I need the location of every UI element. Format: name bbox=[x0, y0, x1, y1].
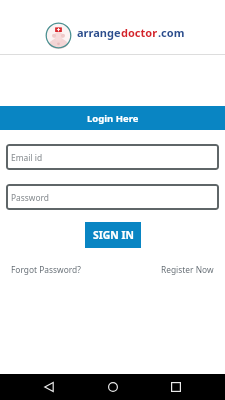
staticText: .com bbox=[158, 25, 185, 40]
button[interactable]: SIGN IN bbox=[85, 222, 141, 248]
staticText: SIGN IN bbox=[93, 228, 134, 242]
button[interactable]: Recent apps bbox=[163, 374, 189, 400]
button[interactable]: Forgot Password? bbox=[11, 264, 81, 275]
staticText: arrange bbox=[77, 25, 121, 40]
staticText: Login Here bbox=[87, 112, 139, 125]
staticText: Password bbox=[11, 192, 49, 203]
staticText: Email id bbox=[11, 152, 43, 163]
button[interactable]: Home bbox=[100, 374, 126, 400]
staticText: doctor bbox=[121, 25, 158, 40]
button[interactable]: Email id bbox=[6, 144, 219, 170]
button[interactable]: Back bbox=[36, 374, 62, 400]
button[interactable]: Register Now bbox=[161, 264, 214, 275]
button[interactable]: Password bbox=[6, 184, 219, 210]
